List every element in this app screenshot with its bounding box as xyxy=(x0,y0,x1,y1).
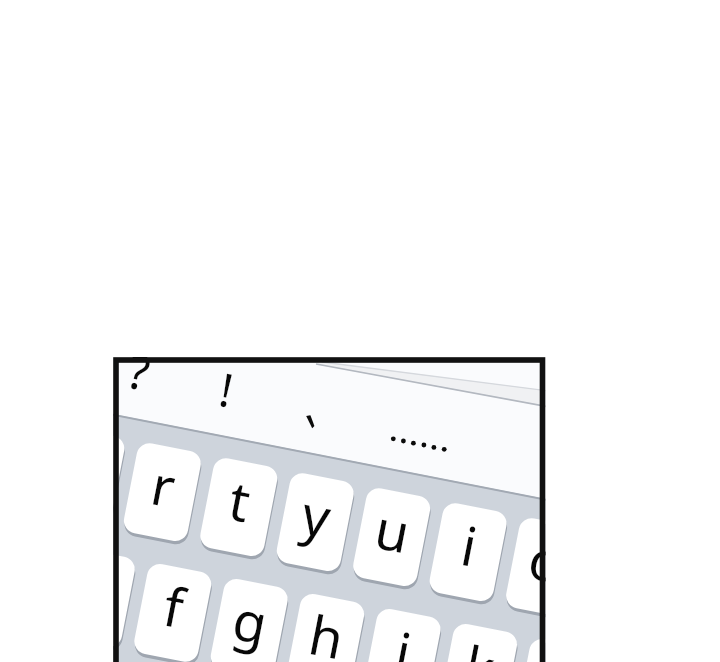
button[interactable]: Key f xyxy=(132,562,213,662)
button[interactable]: Key h xyxy=(285,592,366,662)
button[interactable]: Key l xyxy=(514,637,595,662)
button[interactable]: Key e xyxy=(45,426,126,527)
button[interactable]: Key i xyxy=(428,501,509,602)
button[interactable]: Key g xyxy=(209,577,290,662)
button[interactable]: Key u xyxy=(351,486,432,587)
button[interactable]: Key r xyxy=(122,441,203,542)
button[interactable]: Key o xyxy=(504,516,585,617)
button[interactable]: Key y xyxy=(275,471,356,572)
button[interactable]: Key d xyxy=(56,547,137,648)
button[interactable]: Key j xyxy=(362,607,443,662)
button[interactable]: Key t xyxy=(198,456,279,557)
button[interactable]: Key k xyxy=(438,622,519,662)
